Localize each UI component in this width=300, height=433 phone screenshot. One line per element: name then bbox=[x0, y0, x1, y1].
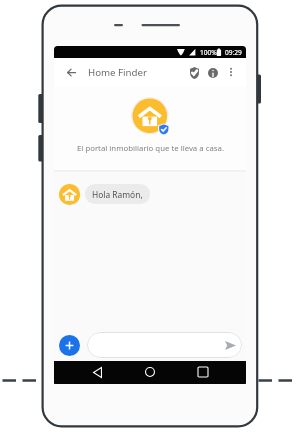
staticText: 09:29 bbox=[225, 48, 242, 57]
button[interactable]: Recent apps bbox=[195, 364, 211, 380]
button[interactable]: New message bbox=[59, 335, 80, 356]
staticText: 100% bbox=[200, 48, 217, 57]
staticText: Home Finder bbox=[88, 66, 148, 79]
button[interactable]: Back bbox=[89, 364, 105, 380]
button[interactable]: Back bbox=[62, 63, 80, 81]
button[interactable]: Home bbox=[142, 364, 158, 380]
button[interactable]: Send bbox=[87, 332, 242, 358]
button[interactable]: Hola Ramón, bbox=[85, 184, 150, 204]
button[interactable]: Information bbox=[204, 64, 221, 81]
staticText: Hola Ramón, bbox=[92, 189, 143, 200]
button[interactable]: Verified bbox=[186, 64, 203, 81]
button[interactable]: Send bbox=[223, 338, 237, 352]
button[interactable]: More options bbox=[223, 64, 239, 80]
staticText: El portal inmobiliario que te lleva a ca… bbox=[77, 143, 224, 154]
